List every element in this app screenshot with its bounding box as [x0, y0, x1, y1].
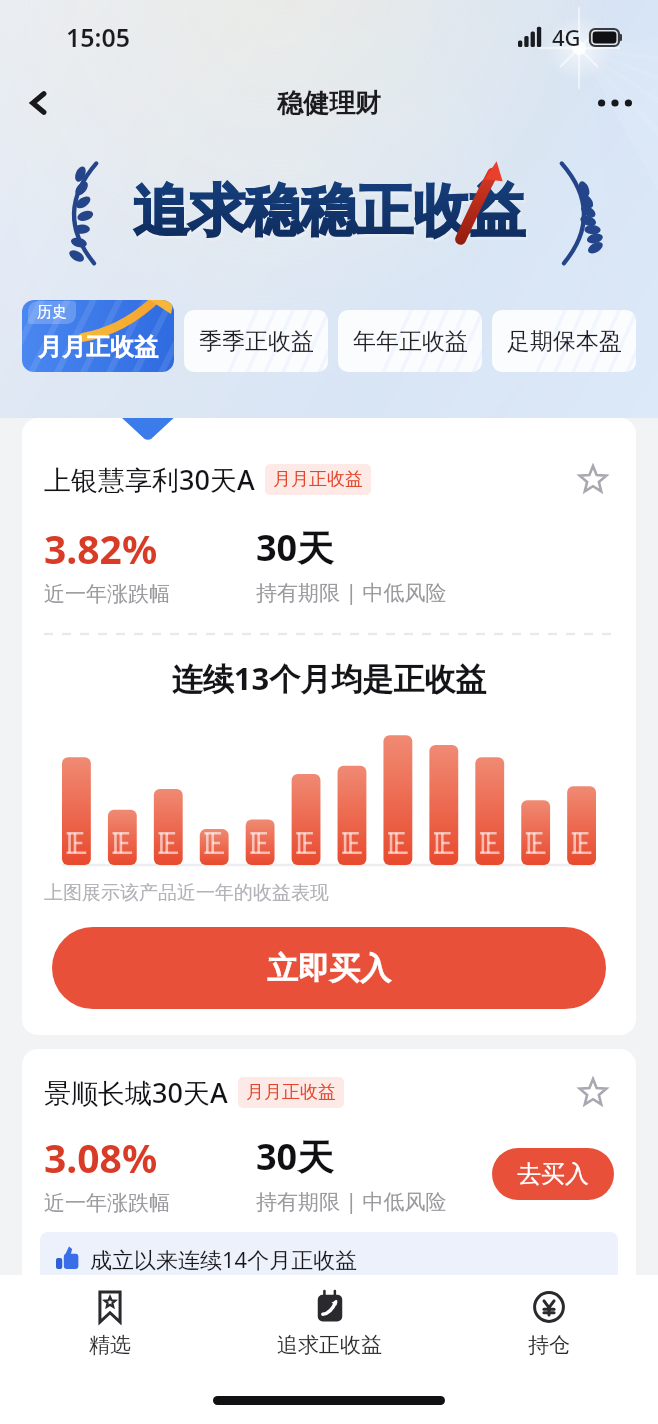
staticText: 景顺长城30天A [44, 1074, 228, 1111]
button[interactable]: Back [14, 78, 64, 128]
staticText: 成立以来连续14个月正收益 [90, 1244, 358, 1274]
staticText: 15:05 [66, 20, 131, 54]
staticText: 追求正收益 [277, 1332, 382, 1358]
staticText: 3.08% [44, 1131, 158, 1184]
staticText: 持仓 [528, 1332, 570, 1358]
button[interactable]: More options [590, 78, 640, 128]
staticText: 月月正收益 [246, 1081, 336, 1104]
button[interactable]: Favorite [572, 1071, 614, 1113]
button[interactable]: 季季正收益 [184, 310, 328, 372]
staticText: 立即买入 [267, 949, 391, 988]
staticText: 精选 [89, 1332, 131, 1358]
button[interactable]: 历史 [22, 300, 174, 372]
staticText: 近一年涨跌幅 [44, 581, 170, 607]
button[interactable]: 追求正收益 [220, 1275, 439, 1385]
staticText: 30天 [256, 1132, 334, 1181]
staticText: 季季正收益 [199, 327, 314, 356]
staticText: 月月正收益 [38, 332, 158, 362]
staticText: 连续13个月均是正收益 [22, 657, 636, 699]
button[interactable]: 持仓 [439, 1275, 658, 1385]
staticText: 4G [552, 22, 581, 52]
staticText: 追求稳稳正收益 [135, 179, 527, 250]
staticText: 持有期限 | 中低风险 [256, 578, 447, 607]
button[interactable]: 足期保本盈 [492, 310, 636, 372]
staticText: 上银慧享利30天A [44, 461, 255, 498]
staticText: 年年正收益 [353, 327, 468, 356]
staticText: 追求稳稳正收益 [133, 176, 525, 247]
button[interactable]: 年年正收益 [338, 310, 482, 372]
staticText: 稳健理财 [277, 87, 381, 120]
button[interactable]: 精选 [0, 1275, 220, 1385]
staticText: 持有期限 | 中低风险 [256, 1187, 447, 1216]
staticText: 3.82% [44, 522, 158, 575]
staticText: 历史 [37, 303, 67, 322]
button[interactable]: 立即买入 [52, 927, 606, 1009]
button[interactable]: Favorite [572, 458, 614, 500]
staticText: 上图展示该产品近一年的收益表现 [44, 881, 329, 905]
staticText: 30天 [256, 523, 334, 572]
staticText: 月月正收益 [273, 468, 363, 491]
button[interactable]: 去买入 [492, 1148, 614, 1200]
staticText: 去买入 [517, 1159, 589, 1189]
staticText: 足期保本盈 [507, 327, 622, 356]
staticText: 近一年涨跌幅 [44, 1190, 170, 1216]
